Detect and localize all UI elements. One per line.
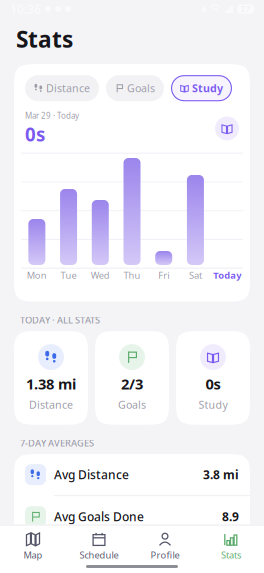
staticText: Tue <box>61 269 77 281</box>
staticText: Avg Study <box>54 551 111 566</box>
staticText: Distance <box>29 398 73 412</box>
staticText: Avg Distance <box>54 467 129 482</box>
button[interactable]: Avg Study <box>14 538 250 573</box>
staticText: Thu <box>123 269 140 281</box>
staticText: TODAY · ALL STATS <box>20 314 100 326</box>
button[interactable]: Study <box>171 75 232 101</box>
staticText: Distance <box>46 81 90 95</box>
staticText: 3.8 mi <box>203 467 239 482</box>
staticText: Mar 29 · Today <box>25 110 79 121</box>
button[interactable]: Schedule <box>66 532 132 561</box>
button[interactable]: Distance <box>25 75 99 101</box>
button[interactable]: Avg Goals Done <box>14 496 250 537</box>
staticText: 0s <box>226 551 239 566</box>
staticText: Stats <box>16 24 73 54</box>
staticText: 8.9 <box>222 509 239 524</box>
staticText: Study <box>192 81 223 95</box>
staticText: 0s <box>205 374 220 394</box>
staticText: Schedule <box>79 549 118 561</box>
staticText: Fri <box>158 269 169 281</box>
staticText: Goals <box>118 398 146 412</box>
button[interactable]: Profile <box>132 532 198 561</box>
button[interactable]: Map <box>0 532 66 561</box>
button[interactable]: Stats <box>198 532 264 561</box>
staticText: Today <box>213 269 241 281</box>
staticText: 1.38 mi <box>26 374 76 394</box>
staticText: 7-DAY AVERAGES <box>20 437 94 449</box>
button[interactable]: Study metric <box>215 116 239 140</box>
staticText: Avg Goals Done <box>54 509 144 524</box>
button[interactable]: Goals <box>106 75 164 101</box>
staticText: Profile <box>150 549 179 561</box>
button[interactable]: Avg Distance <box>14 454 250 495</box>
staticText: Study <box>198 398 227 412</box>
staticText: 27 <box>240 4 250 14</box>
staticText: 0s <box>25 122 45 147</box>
staticText: Sat <box>189 269 202 281</box>
staticText: Goals <box>127 81 155 95</box>
staticText: Stats <box>221 549 241 561</box>
staticText: Wed <box>91 269 110 281</box>
staticText: Mon <box>27 269 47 281</box>
staticText: 2/3 <box>121 374 143 394</box>
staticText: Map <box>23 549 42 561</box>
